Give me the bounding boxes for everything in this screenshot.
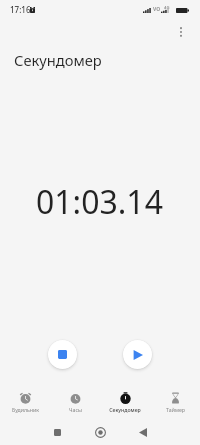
button[interactable]: Back <box>133 422 153 442</box>
staticText: Будильник <box>12 406 39 413</box>
staticText: Секундомер <box>109 406 141 413</box>
staticText: 17:16 <box>10 4 31 15</box>
staticText: 01:03.14 <box>36 180 163 224</box>
button[interactable]: Stop <box>48 340 77 369</box>
staticText: Часы <box>69 406 82 413</box>
button[interactable]: Будильник <box>0 373 50 413</box>
staticText: VO <box>153 6 161 13</box>
staticText: 4G <box>164 5 170 11</box>
staticText: Секундомер <box>14 50 102 70</box>
button[interactable]: Часы <box>50 373 100 413</box>
button[interactable]: Секундомер <box>100 373 150 413</box>
button[interactable]: Recents <box>47 422 67 442</box>
button[interactable]: More options <box>170 21 192 43</box>
staticText: Таймер <box>166 406 185 413</box>
button[interactable]: Start <box>123 340 152 369</box>
button[interactable]: Home <box>90 422 110 442</box>
button[interactable]: Таймер <box>150 373 200 413</box>
